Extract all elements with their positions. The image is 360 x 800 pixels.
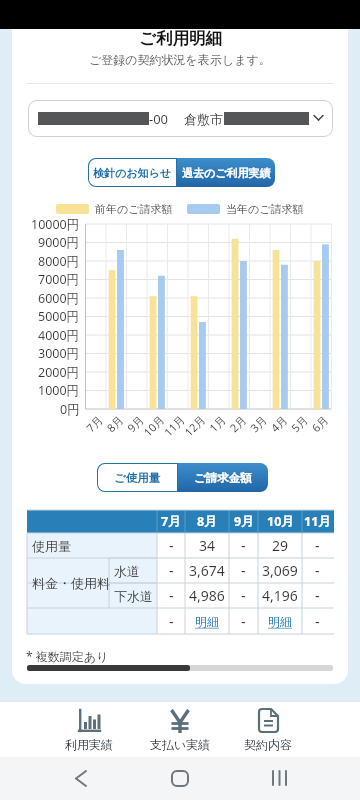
staticText: 8月 xyxy=(197,513,217,530)
staticText: 使用量 xyxy=(32,538,71,554)
staticText: 4,196 xyxy=(262,586,298,605)
staticText: - xyxy=(315,536,320,555)
staticText: ご登録の契約状況を表示します。 xyxy=(89,52,271,67)
button[interactable]: 過去のご利用実績 xyxy=(177,158,275,187)
staticText: 検針のお知らせ xyxy=(93,166,172,180)
button[interactable] xyxy=(45,696,135,754)
staticText: ご使用量 xyxy=(114,471,161,485)
staticText: ご請求金額 xyxy=(194,471,252,485)
staticText: - xyxy=(315,612,320,631)
staticText: - xyxy=(169,561,174,580)
staticText: 契約内容 xyxy=(244,737,292,752)
staticText: 3,674 xyxy=(189,561,225,580)
staticText: 明細 xyxy=(268,614,292,629)
staticText: * 複数調定あり xyxy=(26,648,109,664)
button[interactable] xyxy=(135,696,225,754)
staticText: 下水道 xyxy=(114,588,153,604)
staticText: 34 xyxy=(199,536,216,555)
button[interactable]: ご請求金額 xyxy=(178,463,268,492)
button[interactable] xyxy=(56,760,106,798)
staticText: 11月 xyxy=(304,513,331,530)
staticText: 当年のご請求額 xyxy=(226,202,304,216)
staticText: 過去のご利用実績 xyxy=(182,166,271,180)
staticText: - xyxy=(169,586,174,605)
staticText: - xyxy=(241,612,246,631)
staticText: 支払い実績 xyxy=(150,737,211,752)
staticText: - xyxy=(169,536,174,555)
staticText: 明細 xyxy=(195,614,219,629)
staticText: ご利用明細 xyxy=(139,28,222,49)
staticText: - xyxy=(315,561,320,580)
staticText: 倉敷市 xyxy=(184,111,223,127)
button[interactable]: 検針のお知らせ xyxy=(88,158,177,187)
staticText: 3,069 xyxy=(262,561,298,580)
staticText: 水道 xyxy=(114,563,140,579)
staticText: - xyxy=(241,586,246,605)
staticText: 料金・使用料 xyxy=(32,575,110,591)
button[interactable]: 明細 xyxy=(185,608,229,634)
button[interactable] xyxy=(254,760,304,798)
button[interactable]: ご使用量 xyxy=(97,463,178,492)
staticText: 9月 xyxy=(234,513,254,530)
staticText: 利用実績 xyxy=(65,737,113,752)
button[interactable] xyxy=(155,760,205,798)
button[interactable] xyxy=(225,696,315,754)
staticText: - xyxy=(315,586,320,605)
staticText: 4,986 xyxy=(189,586,225,605)
staticText: - xyxy=(241,561,246,580)
staticText: 10月 xyxy=(267,513,294,530)
staticText: 7月 xyxy=(161,513,181,530)
staticText: - xyxy=(169,612,174,631)
staticText: 29 xyxy=(272,536,289,555)
button[interactable]: 明細 xyxy=(258,608,302,634)
staticText: -00 xyxy=(149,110,169,128)
staticText: 前年のご請求額 xyxy=(95,202,173,216)
staticText: - xyxy=(241,536,246,555)
button[interactable] xyxy=(28,100,333,137)
